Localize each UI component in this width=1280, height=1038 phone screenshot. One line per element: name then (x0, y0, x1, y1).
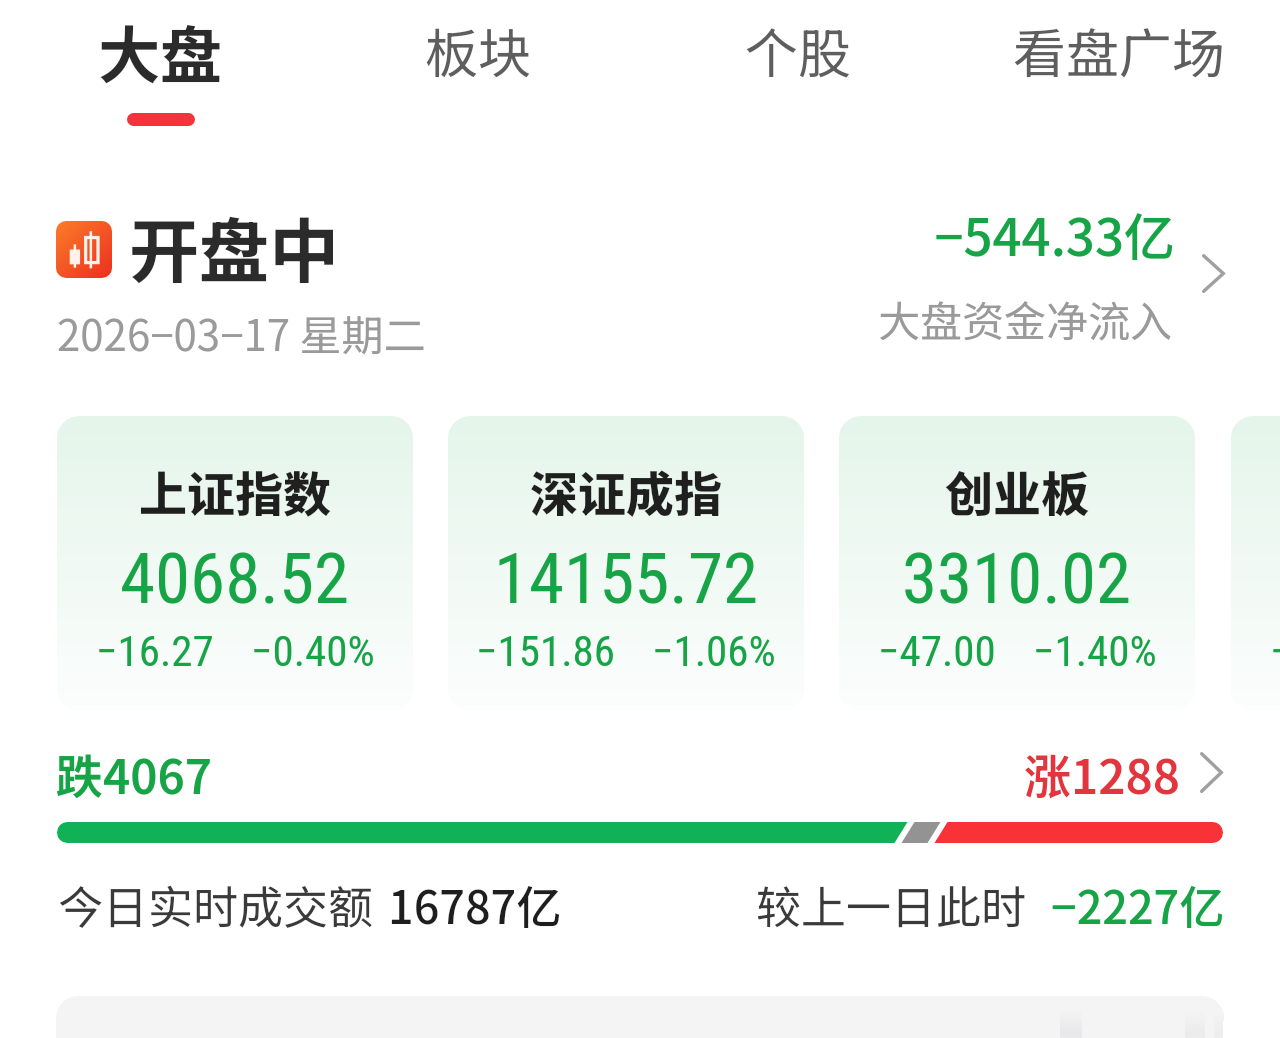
staticText: −16.27 (96, 626, 214, 676)
staticText: 4068.52 (120, 537, 350, 620)
staticText: 涨1288 (836, 739, 1180, 799)
button[interactable]: 上证指数 (57, 416, 413, 711)
staticText: 看盘广场 (1013, 12, 1225, 89)
staticText: 大盘 (98, 6, 223, 96)
staticText: 大盘资金净流入 (860, 288, 1172, 349)
staticText: 16787亿 (388, 872, 562, 937)
button[interactable]: 看盘广场 (993, 0, 1245, 120)
staticText: 上证指数 (139, 456, 332, 526)
staticText: −1.40% (1033, 626, 1157, 676)
staticText: −151.86 (476, 626, 615, 676)
other: 涨跌家数详情 (1200, 752, 1223, 793)
staticText: 较上一日此时 (756, 872, 1027, 937)
other: 大盘资金净流入详情 (1202, 254, 1225, 293)
button[interactable]: 创业板 (839, 416, 1195, 711)
button[interactable]: 个股 (724, 0, 871, 120)
staticText: 深证成指 (530, 456, 723, 526)
button[interactable]: 科创50 (1231, 416, 1280, 711)
staticText: −47.00 (878, 626, 996, 676)
staticText: −0.40% (251, 626, 375, 676)
button[interactable]: 板块 (401, 0, 554, 120)
staticText: 创业板 (945, 456, 1090, 526)
button[interactable]: −544.33亿 (860, 196, 1228, 348)
staticText: 板块 (425, 12, 531, 89)
staticText: 跌4067 (56, 739, 213, 799)
button[interactable]: 深证成指 (448, 416, 804, 711)
staticText: −1.06% (652, 626, 776, 676)
staticText: 今日实时成交额 (58, 872, 374, 937)
button[interactable]: 跌4067 (56, 744, 1224, 804)
staticText: −544.33亿 (863, 197, 1175, 271)
staticText: 个股 (745, 12, 851, 89)
staticText: 3310.02 (902, 537, 1132, 620)
staticText: 开盘中 (129, 196, 339, 297)
staticText: −16.62 (1270, 626, 1280, 676)
staticText: 14155.72 (494, 537, 759, 620)
staticText: 2026−03−17 星期二 (57, 302, 426, 363)
button[interactable]: 大盘 (64, 0, 256, 140)
staticText: −2227亿 (1051, 872, 1225, 937)
